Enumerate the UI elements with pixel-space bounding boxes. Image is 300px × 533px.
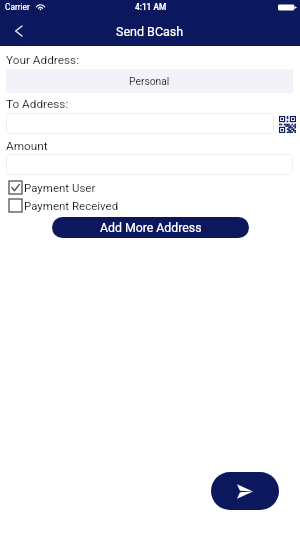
staticText: Carrier — [5, 2, 30, 12]
button[interactable]: Back — [5, 17, 31, 43]
button[interactable]: Scan QR code — [277, 114, 297, 135]
button[interactable]: Add More Address — [52, 217, 249, 238]
staticText: Payment Received — [24, 199, 119, 212]
staticText: To Address: — [6, 97, 69, 111]
button[interactable]: Personal — [6, 69, 293, 93]
button[interactable]: Payment Received — [9, 198, 119, 212]
staticText: 4:11 AM — [135, 2, 167, 12]
staticText: Your Address: — [6, 53, 80, 67]
button[interactable]: Payment User — [9, 180, 96, 194]
staticText: Send BCash — [116, 24, 184, 39]
staticText: Add More Address — [100, 221, 202, 235]
staticText: Personal — [129, 75, 170, 87]
button[interactable] — [6, 154, 293, 175]
button[interactable]: Send — [211, 472, 279, 510]
staticText: Payment User — [24, 181, 96, 194]
button[interactable] — [6, 113, 274, 134]
staticText: Amount — [6, 139, 48, 153]
